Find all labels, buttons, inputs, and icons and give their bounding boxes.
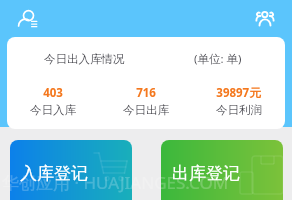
staticText: 今日入库 <box>30 103 76 117</box>
staticText: 入库登记 <box>20 163 88 184</box>
staticText: 今日出入库情况 <box>44 52 125 66</box>
staticText: 403 <box>43 85 63 101</box>
staticText: 39897元 <box>216 85 261 101</box>
staticText: 出库登记 <box>172 163 240 184</box>
staticText: 今日出库 <box>123 103 169 117</box>
button[interactable]: Profile <box>18 10 40 30</box>
staticText: 716 <box>136 85 156 101</box>
staticText: (单位: 单) <box>194 51 242 67</box>
button[interactable]: Team members <box>256 11 274 27</box>
staticText: 华创应用 · HUAJIANGES.COM <box>2 171 229 194</box>
button[interactable]: 入库登记 <box>10 140 132 200</box>
staticText: 今日利润 <box>216 103 262 117</box>
button[interactable]: 出库登记 <box>161 140 283 200</box>
